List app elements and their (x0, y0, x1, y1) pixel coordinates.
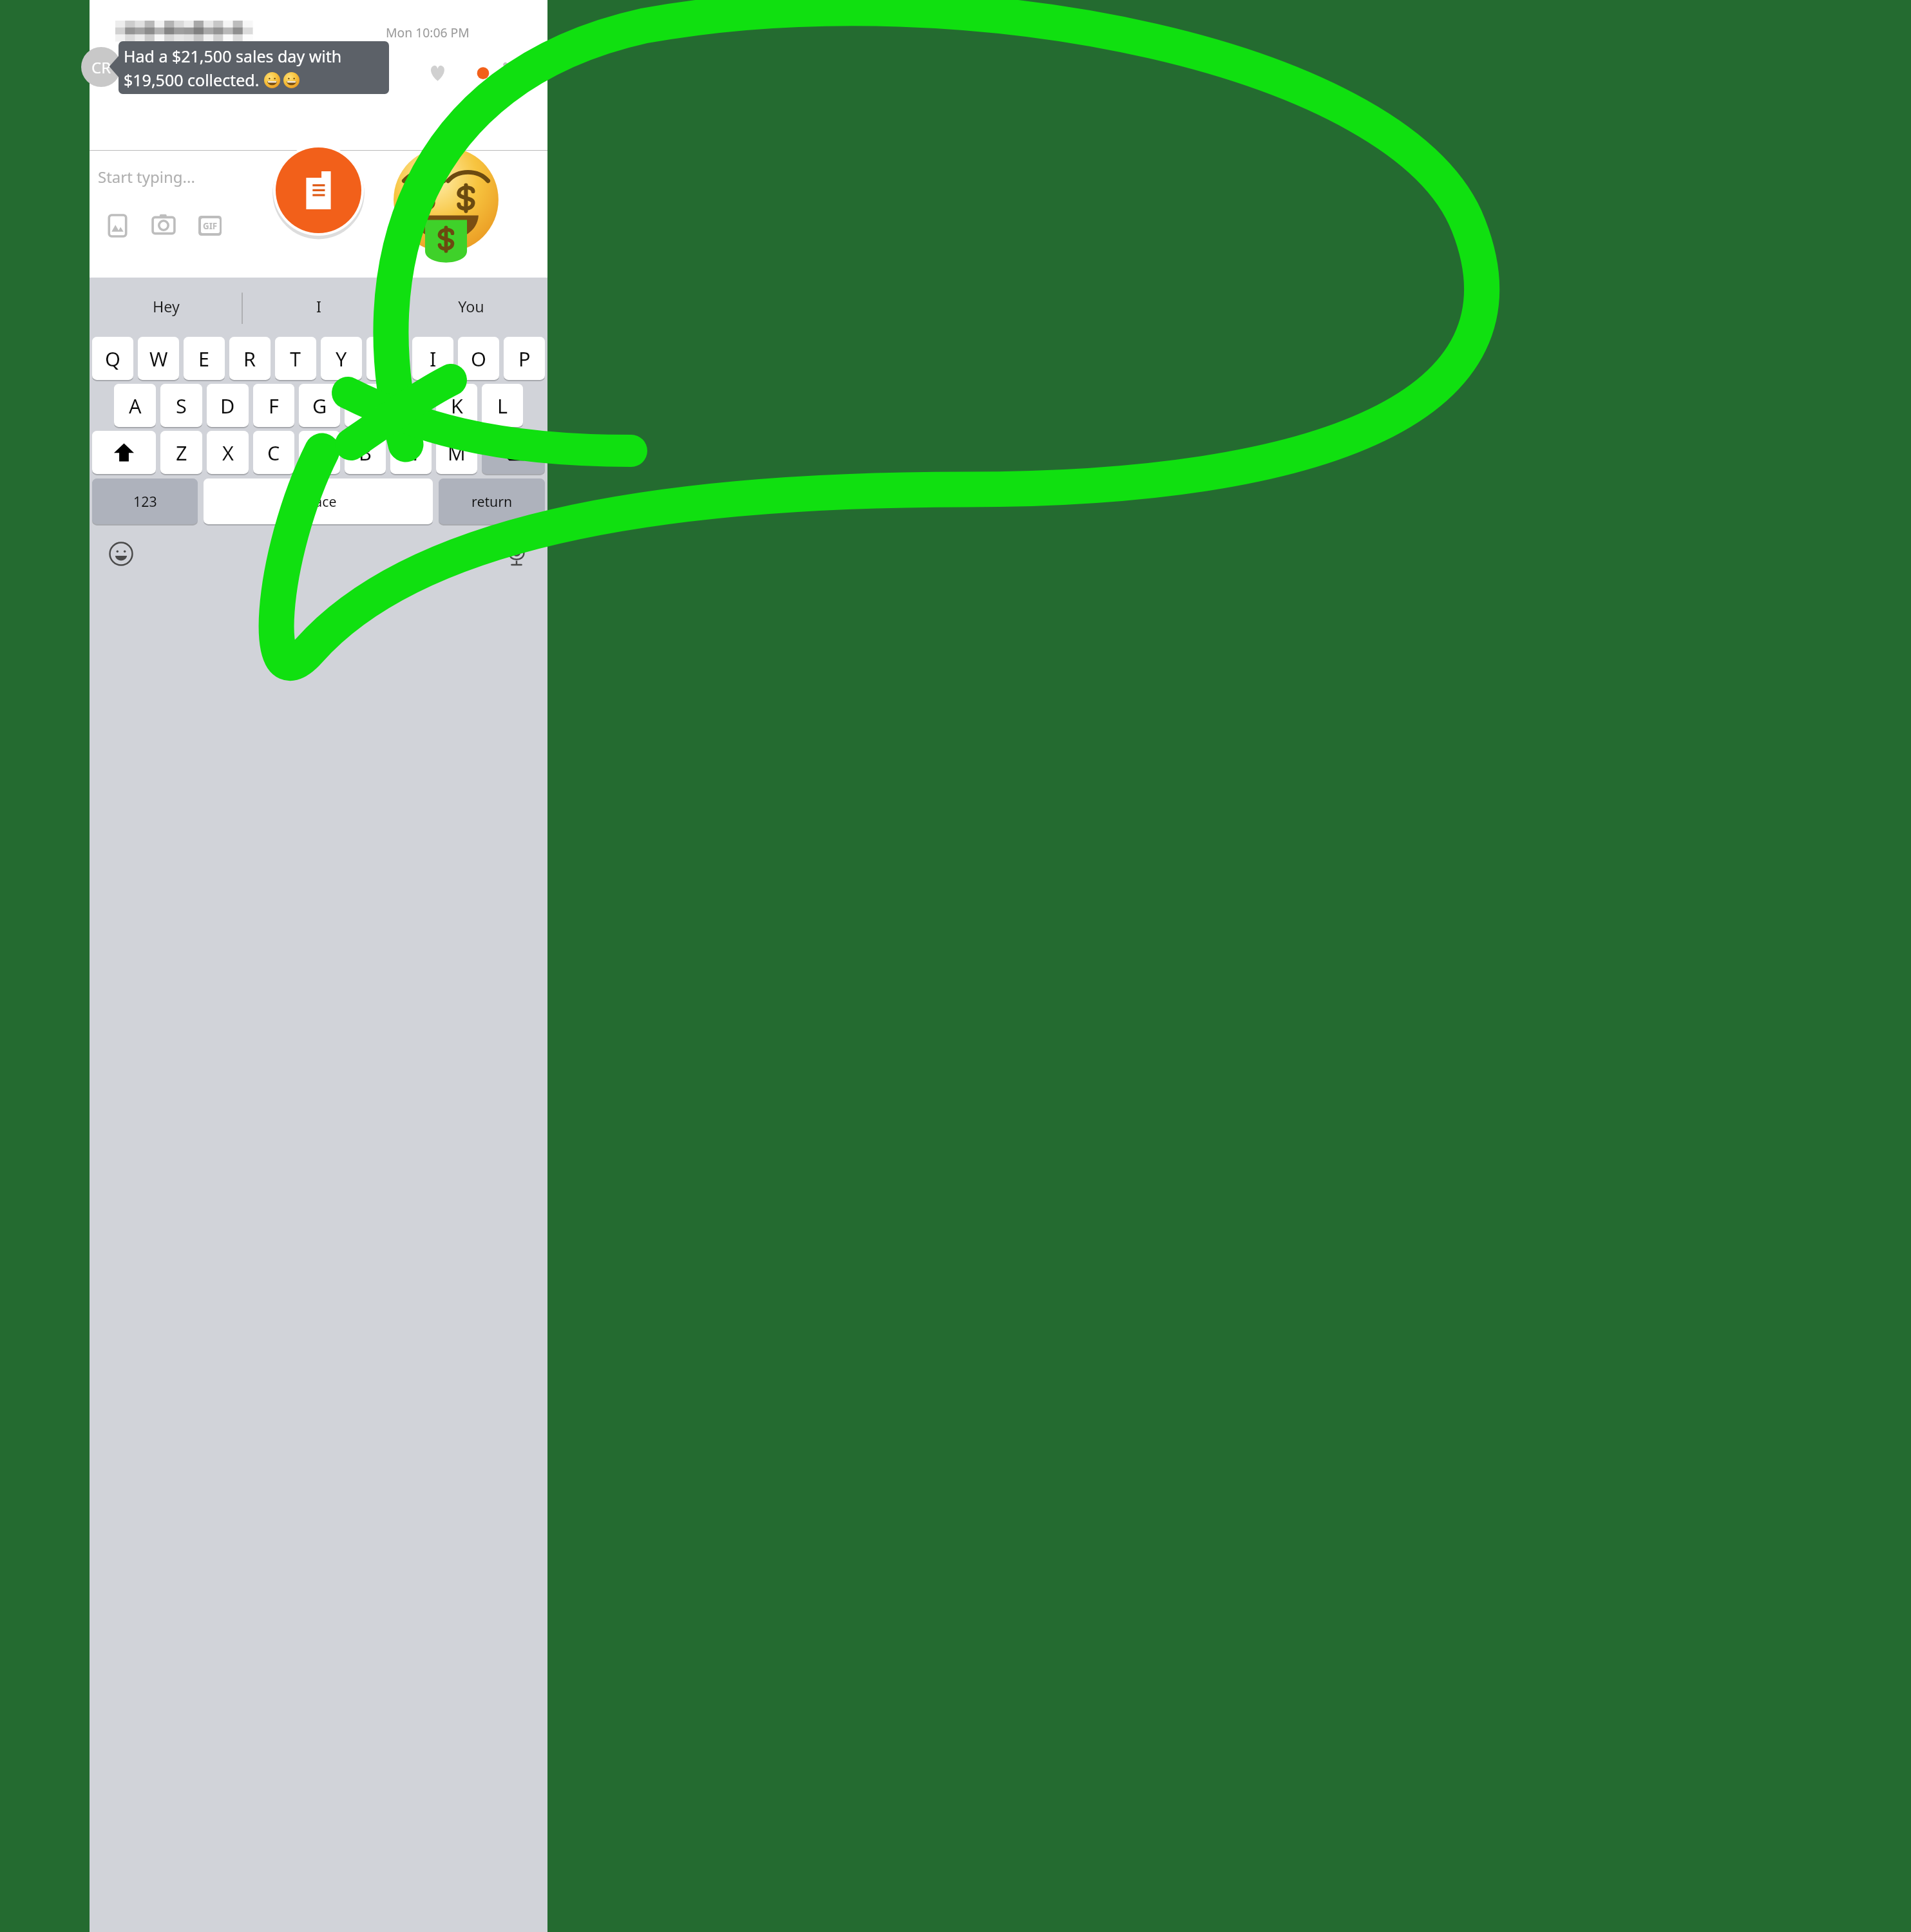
button[interactable]: X (207, 431, 249, 474)
button[interactable]: Z (160, 431, 202, 474)
button[interactable]: A (114, 384, 156, 427)
staticText: Hey (153, 296, 180, 317)
staticText: Z (176, 439, 187, 466)
staticText: S (176, 392, 187, 419)
button[interactable]: P (504, 337, 545, 380)
staticText: GIF (203, 220, 218, 232)
button[interactable]: Like (426, 61, 450, 85)
staticText: G (312, 392, 327, 419)
button[interactable]: T (275, 337, 316, 380)
staticText: H (358, 392, 373, 419)
staticText: B (359, 439, 372, 466)
button[interactable]: C (253, 431, 294, 474)
button[interactable]: N (390, 431, 432, 474)
staticText: F (269, 392, 279, 419)
button[interactable]: G (299, 384, 340, 427)
button[interactable]: Q (92, 337, 133, 380)
button[interactable]: Open conversation (470, 60, 529, 86)
staticText: R (243, 345, 256, 372)
button[interactable]: Backspace (482, 431, 545, 474)
button[interactable]: L (482, 384, 523, 427)
button[interactable]: space (204, 478, 433, 524)
button[interactable]: S (160, 384, 202, 427)
button[interactable]: 123 (92, 478, 198, 524)
button[interactable]: W (138, 337, 179, 380)
staticText: space (299, 492, 337, 511)
button[interactable]: E (184, 337, 225, 380)
button[interactable]: Send voice note (271, 143, 366, 238)
button[interactable]: K (436, 384, 477, 427)
staticText: W (149, 345, 168, 372)
button[interactable]: Had a $21,500 sales day with (119, 41, 389, 94)
button[interactable]: D (207, 384, 249, 427)
staticText: O (471, 345, 486, 372)
staticText: P (518, 345, 531, 372)
staticText: E (198, 345, 210, 372)
button[interactable]: Money face sticker (393, 145, 499, 264)
button[interactable]: CR (81, 47, 121, 87)
button[interactable]: H (345, 384, 386, 427)
staticText: Q (105, 345, 120, 372)
staticText: X (222, 439, 234, 466)
button[interactable]: Shift (92, 431, 156, 474)
staticText: N (403, 439, 419, 466)
button[interactable]: GIF (194, 209, 226, 241)
staticText: T (290, 345, 301, 372)
button[interactable]: R (229, 337, 271, 380)
staticText: M (448, 439, 466, 466)
button[interactable]: Y (321, 337, 362, 380)
staticText: D (220, 392, 235, 419)
button[interactable]: Camera (147, 209, 180, 241)
staticText: K (451, 392, 463, 419)
staticText: Y (336, 345, 347, 372)
staticText: $19,500 collected. (124, 69, 260, 91)
button[interactable]: Hey (90, 278, 242, 336)
button[interactable]: M (436, 431, 477, 474)
button[interactable]: F (253, 384, 294, 427)
button[interactable]: B (345, 431, 386, 474)
button[interactable]: return (439, 478, 545, 524)
staticText: C (267, 439, 280, 466)
button[interactable]: Photo (101, 209, 133, 241)
button[interactable]: You (395, 278, 547, 336)
button[interactable]: I (412, 337, 453, 380)
staticText: Start typing... (98, 166, 195, 187)
button[interactable]: U (366, 337, 408, 380)
staticText: L (497, 392, 508, 419)
button[interactable]: V (299, 431, 340, 474)
staticText: 123 (133, 492, 157, 511)
staticText: I (316, 296, 321, 317)
staticText: You (458, 296, 484, 317)
staticText: return (471, 492, 513, 511)
staticText: I (430, 345, 437, 372)
button[interactable]: Emoji keyboard (102, 535, 139, 572)
button[interactable]: I (242, 278, 395, 336)
staticText: Had a $21,500 sales day with (124, 45, 342, 67)
button[interactable]: Dictation (498, 535, 535, 572)
staticText: A (129, 392, 142, 419)
staticText: CR (91, 57, 111, 78)
staticText: Mon 10:06 PM (386, 24, 470, 41)
button[interactable]: O (458, 337, 499, 380)
